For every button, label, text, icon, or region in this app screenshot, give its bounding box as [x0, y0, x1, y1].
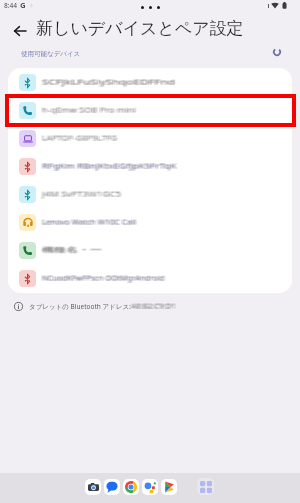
- staticText: 8:44: [4, 1, 18, 10]
- button[interactable]: Play Store: [161, 479, 177, 495]
- button[interactable]: Assistant: [142, 479, 158, 495]
- button[interactable]: [8, 152, 292, 180]
- staticText: G: [20, 0, 26, 11]
- button[interactable]: Camera: [85, 479, 101, 495]
- button[interactable]: Chrome: [123, 479, 139, 495]
- button[interactable]: Searching for devices: [268, 43, 286, 61]
- button[interactable]: [8, 96, 292, 124]
- button[interactable]: Back: [10, 21, 30, 41]
- button[interactable]: [8, 208, 292, 236]
- staticText: 使用可能なデバイス: [21, 50, 81, 58]
- staticText: タブレットの Bluetooth アドレス:: [29, 302, 131, 311]
- button[interactable]: [8, 264, 292, 292]
- button[interactable]: [8, 236, 292, 264]
- button[interactable]: All apps: [197, 478, 214, 495]
- staticText: 新しいデバイスとペア設定: [36, 18, 244, 39]
- button[interactable]: Messages: [104, 479, 120, 495]
- button[interactable]: [8, 124, 292, 152]
- button[interactable]: [8, 68, 292, 96]
- button[interactable]: [8, 180, 292, 208]
